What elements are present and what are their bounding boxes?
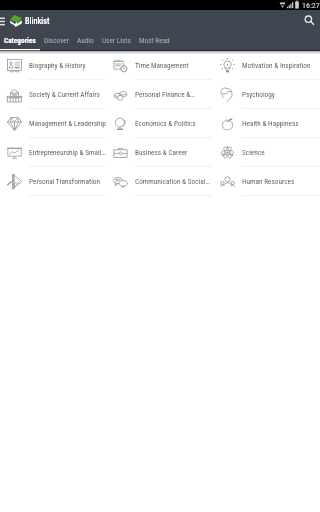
button[interactable]: Audio <box>73 31 98 51</box>
staticText: Health & Happiness <box>242 119 299 128</box>
staticText: Human Resources <box>242 177 295 186</box>
button[interactable]: Management & Leadership <box>0 109 106 138</box>
button[interactable]: Communication & Social… <box>106 167 213 196</box>
button[interactable]: Science <box>213 138 320 167</box>
staticText: Personal Transformation <box>29 177 101 186</box>
staticText: Blinkist <box>25 16 50 26</box>
staticText: Business & Career <box>135 148 188 157</box>
button[interactable]: Open navigation menu <box>0 10 9 31</box>
staticText: Personal Finance &… <box>135 90 195 99</box>
button[interactable]: Personal Finance &… <box>106 80 213 109</box>
staticText: Society & Current Affairs <box>29 90 100 99</box>
button[interactable]: Biography & History <box>0 51 106 80</box>
staticText: Categories <box>4 36 36 45</box>
button[interactable]: Categories <box>0 31 40 51</box>
button[interactable]: Business & Career <box>106 138 213 167</box>
staticText: Biography & History <box>29 61 86 70</box>
staticText: Science <box>242 148 265 157</box>
button[interactable]: Motivation & Inspiration <box>213 51 320 80</box>
button[interactable]: Health & Happiness <box>213 109 320 138</box>
staticText: Motivation & Inspiration <box>242 61 311 70</box>
button[interactable]: Search <box>301 10 317 31</box>
staticText: Communication & Social… <box>135 177 210 186</box>
staticText: Most Read <box>139 36 170 45</box>
staticText: Audio <box>77 36 94 45</box>
staticText: Time Management <box>135 61 189 70</box>
staticText: Management & Leadership <box>29 119 106 128</box>
button[interactable]: Psychology <box>213 80 320 109</box>
staticText: Economics & Politics <box>135 119 196 128</box>
button[interactable]: Human Resources <box>213 167 320 196</box>
staticText: Psychology <box>242 90 275 99</box>
button[interactable]: Most Read <box>135 31 174 51</box>
button[interactable]: Personal Transformation <box>0 167 106 196</box>
staticText: User Lists <box>102 36 131 45</box>
button[interactable]: Discover <box>40 31 73 51</box>
staticText: 16:27 <box>302 1 320 10</box>
staticText: Entrepreneurship & Small & Medium Busine… <box>29 148 106 157</box>
button[interactable]: Society & Current Affairs <box>0 80 106 109</box>
button[interactable]: Entrepreneurship & Small & Medium Busine… <box>0 138 106 167</box>
button[interactable]: Economics & Politics <box>106 109 213 138</box>
staticText: Discover <box>44 36 69 45</box>
button[interactable]: Time Management <box>106 51 213 80</box>
button[interactable]: User Lists <box>98 31 135 51</box>
